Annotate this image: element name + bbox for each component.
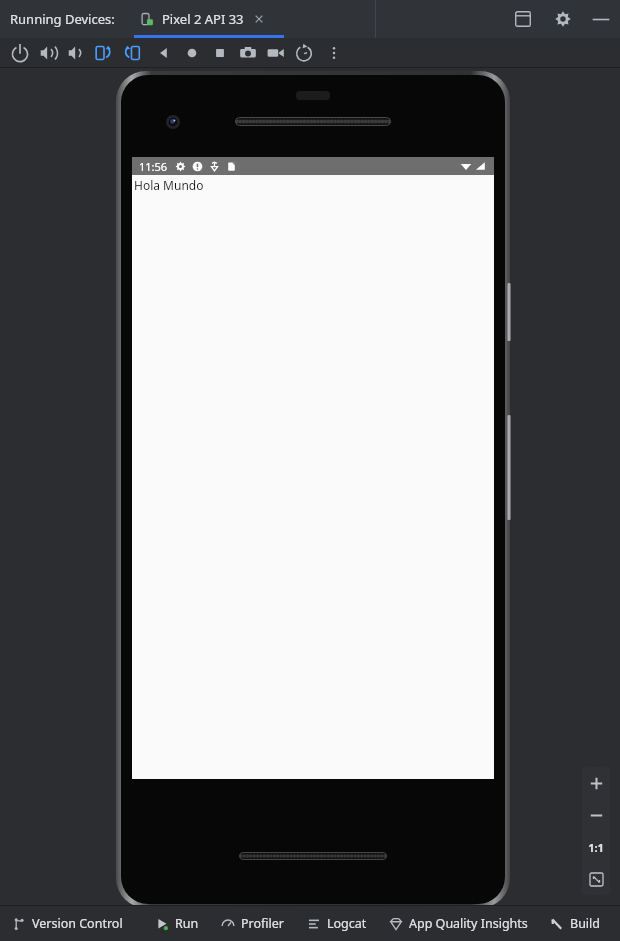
button[interactable]: Volume down <box>62 39 90 67</box>
button[interactable]: Build <box>548 911 602 936</box>
button[interactable]: Restore <box>290 39 318 67</box>
button[interactable]: Close tab <box>252 12 266 26</box>
button[interactable]: Power <box>6 39 34 67</box>
staticText: 1:1 <box>588 840 604 855</box>
staticText: Run <box>175 915 199 932</box>
button[interactable]: Back <box>150 39 178 67</box>
staticText: App Quality Insights <box>409 915 528 932</box>
staticText: Pixel 2 API 33 <box>162 10 244 28</box>
button[interactable]: Rotate left <box>90 39 118 67</box>
button[interactable]: Zoom to fit <box>582 863 610 895</box>
staticText: 11:56 <box>139 159 168 174</box>
button[interactable]: More <box>320 39 348 67</box>
staticText: Build <box>570 915 600 932</box>
button[interactable]: Settings <box>550 6 576 32</box>
button[interactable]: Overview <box>206 39 234 67</box>
button[interactable]: Logcat <box>305 911 369 936</box>
button[interactable]: App Quality Insights <box>387 911 530 936</box>
staticText: Running Devices: <box>10 10 115 28</box>
button[interactable]: Run <box>153 911 201 936</box>
button[interactable]: Version Control <box>10 911 125 936</box>
button[interactable]: Profiler <box>219 911 287 936</box>
button[interactable]: Pixel 2 API 33 <box>140 0 266 38</box>
button[interactable]: Home <box>178 39 206 67</box>
button[interactable]: 1:1 <box>582 831 610 863</box>
button[interactable]: Screenshot <box>234 39 262 67</box>
staticText: Version Control <box>32 915 123 932</box>
staticText: Profiler <box>241 915 285 932</box>
button[interactable]: Volume up <box>34 39 62 67</box>
button[interactable]: Zoom out <box>582 799 610 831</box>
button[interactable]: Record screen <box>262 39 290 67</box>
button[interactable]: Minimize <box>588 6 614 32</box>
button[interactable]: Window layout <box>510 6 536 32</box>
button[interactable]: Zoom in <box>582 767 610 799</box>
staticText: Hola Mundo <box>134 177 204 193</box>
staticText: Logcat <box>327 915 367 932</box>
button[interactable]: Rotate right <box>118 39 146 67</box>
